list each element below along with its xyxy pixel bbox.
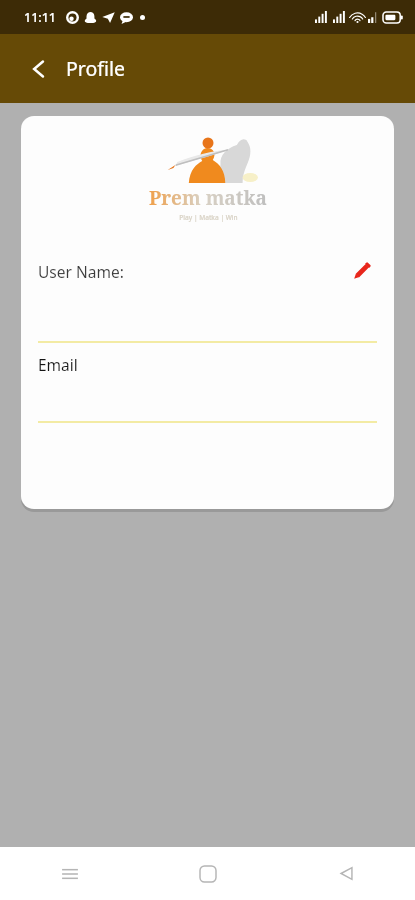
staticText: Prem matka xyxy=(149,185,267,211)
button[interactable]: Recent apps xyxy=(0,847,139,900)
staticText: Profile xyxy=(66,55,126,82)
button[interactable]: Back xyxy=(17,47,61,91)
button[interactable]: Home xyxy=(139,847,277,900)
staticText: User Name: xyxy=(38,261,124,282)
button[interactable]: Back xyxy=(277,847,415,900)
staticText: Email xyxy=(38,354,78,375)
button[interactable]: User Name: xyxy=(21,241,394,341)
button[interactable]: Email xyxy=(21,343,394,421)
staticText: 11:11 xyxy=(24,9,57,26)
staticText: Play | Matka | Win xyxy=(179,213,238,222)
button[interactable]: Edit user name xyxy=(342,251,382,291)
